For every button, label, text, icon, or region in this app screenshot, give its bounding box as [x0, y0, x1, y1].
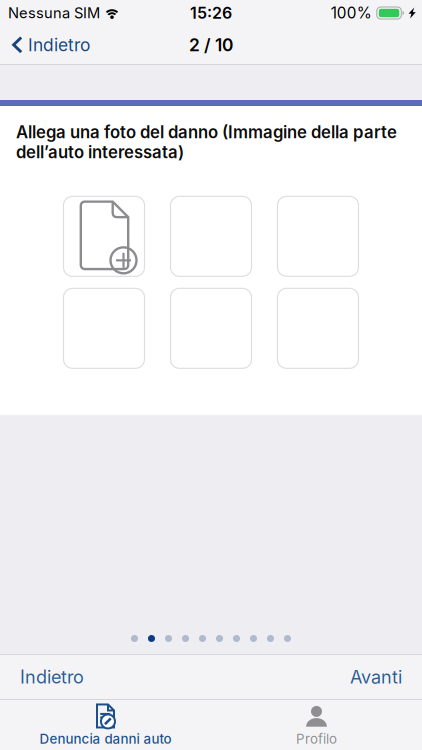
- button[interactable]: Denuncia danni auto: [0, 700, 211, 750]
- staticText: 100%: [331, 4, 372, 22]
- staticText: Allega una foto del danno (Immagine dell…: [16, 122, 397, 162]
- button[interactable]: Aggiungi foto: [277, 288, 358, 368]
- button[interactable]: Aggiungi foto: [170, 288, 251, 368]
- staticText: Denuncia danni auto: [39, 731, 171, 747]
- button[interactable]: Aggiungi foto: [63, 288, 144, 368]
- button[interactable]: Aggiungi foto: [277, 196, 358, 276]
- staticText: Profilo: [296, 731, 337, 747]
- button[interactable]: Avanti: [330, 655, 422, 699]
- button[interactable]: Profilo: [211, 700, 422, 750]
- button[interactable]: Aggiungi foto: [170, 196, 251, 276]
- staticText: Indietro: [20, 666, 84, 688]
- button[interactable]: Aggiungi foto: [63, 196, 144, 276]
- staticText: Indietro: [28, 34, 90, 55]
- staticText: 15:26: [190, 3, 232, 23]
- button[interactable]: Indietro: [0, 655, 104, 699]
- staticText: 2 / 10: [189, 34, 233, 55]
- button[interactable]: Indietro: [0, 26, 100, 64]
- staticText: Nessuna SIM: [8, 4, 100, 22]
- staticText: Avanti: [350, 666, 402, 688]
